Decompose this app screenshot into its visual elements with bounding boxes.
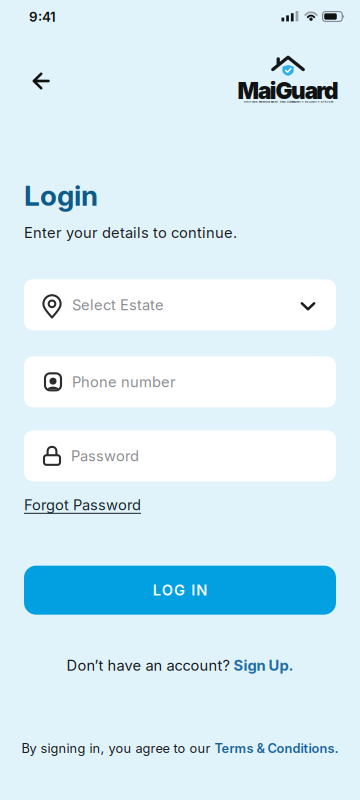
button[interactable]: Back	[21, 61, 61, 101]
staticText: Login	[24, 179, 98, 212]
staticText: 9:41	[29, 9, 56, 25]
staticText: Phone number	[72, 373, 176, 390]
staticText: Enter your details to continue.	[24, 224, 237, 241]
staticText: Password	[71, 447, 139, 464]
button[interactable]: Select Estate	[24, 279, 336, 330]
button[interactable]: Sign Up.	[233, 657, 293, 674]
staticText: Sign Up.	[233, 657, 293, 674]
staticText: Forgot Password	[24, 496, 141, 514]
staticText: By signing in, you agree to our	[21, 740, 214, 756]
staticText: Don’t have an account?	[66, 657, 233, 674]
button[interactable]: Forgot Password	[24, 496, 141, 514]
staticText: Select Estate	[72, 296, 164, 313]
staticText: MaiGuard	[237, 77, 339, 104]
button[interactable]: LOG IN	[24, 566, 336, 615]
button[interactable]: Terms & Conditions.	[214, 740, 338, 756]
staticText: VISITORS MANAGEMENT AND COMMUNITY SECURI…	[244, 100, 333, 103]
button[interactable]: Password	[24, 430, 336, 481]
staticText: Terms & Conditions.	[214, 740, 338, 756]
staticText: LOG IN	[153, 581, 207, 599]
button[interactable]: Phone number	[24, 356, 336, 407]
